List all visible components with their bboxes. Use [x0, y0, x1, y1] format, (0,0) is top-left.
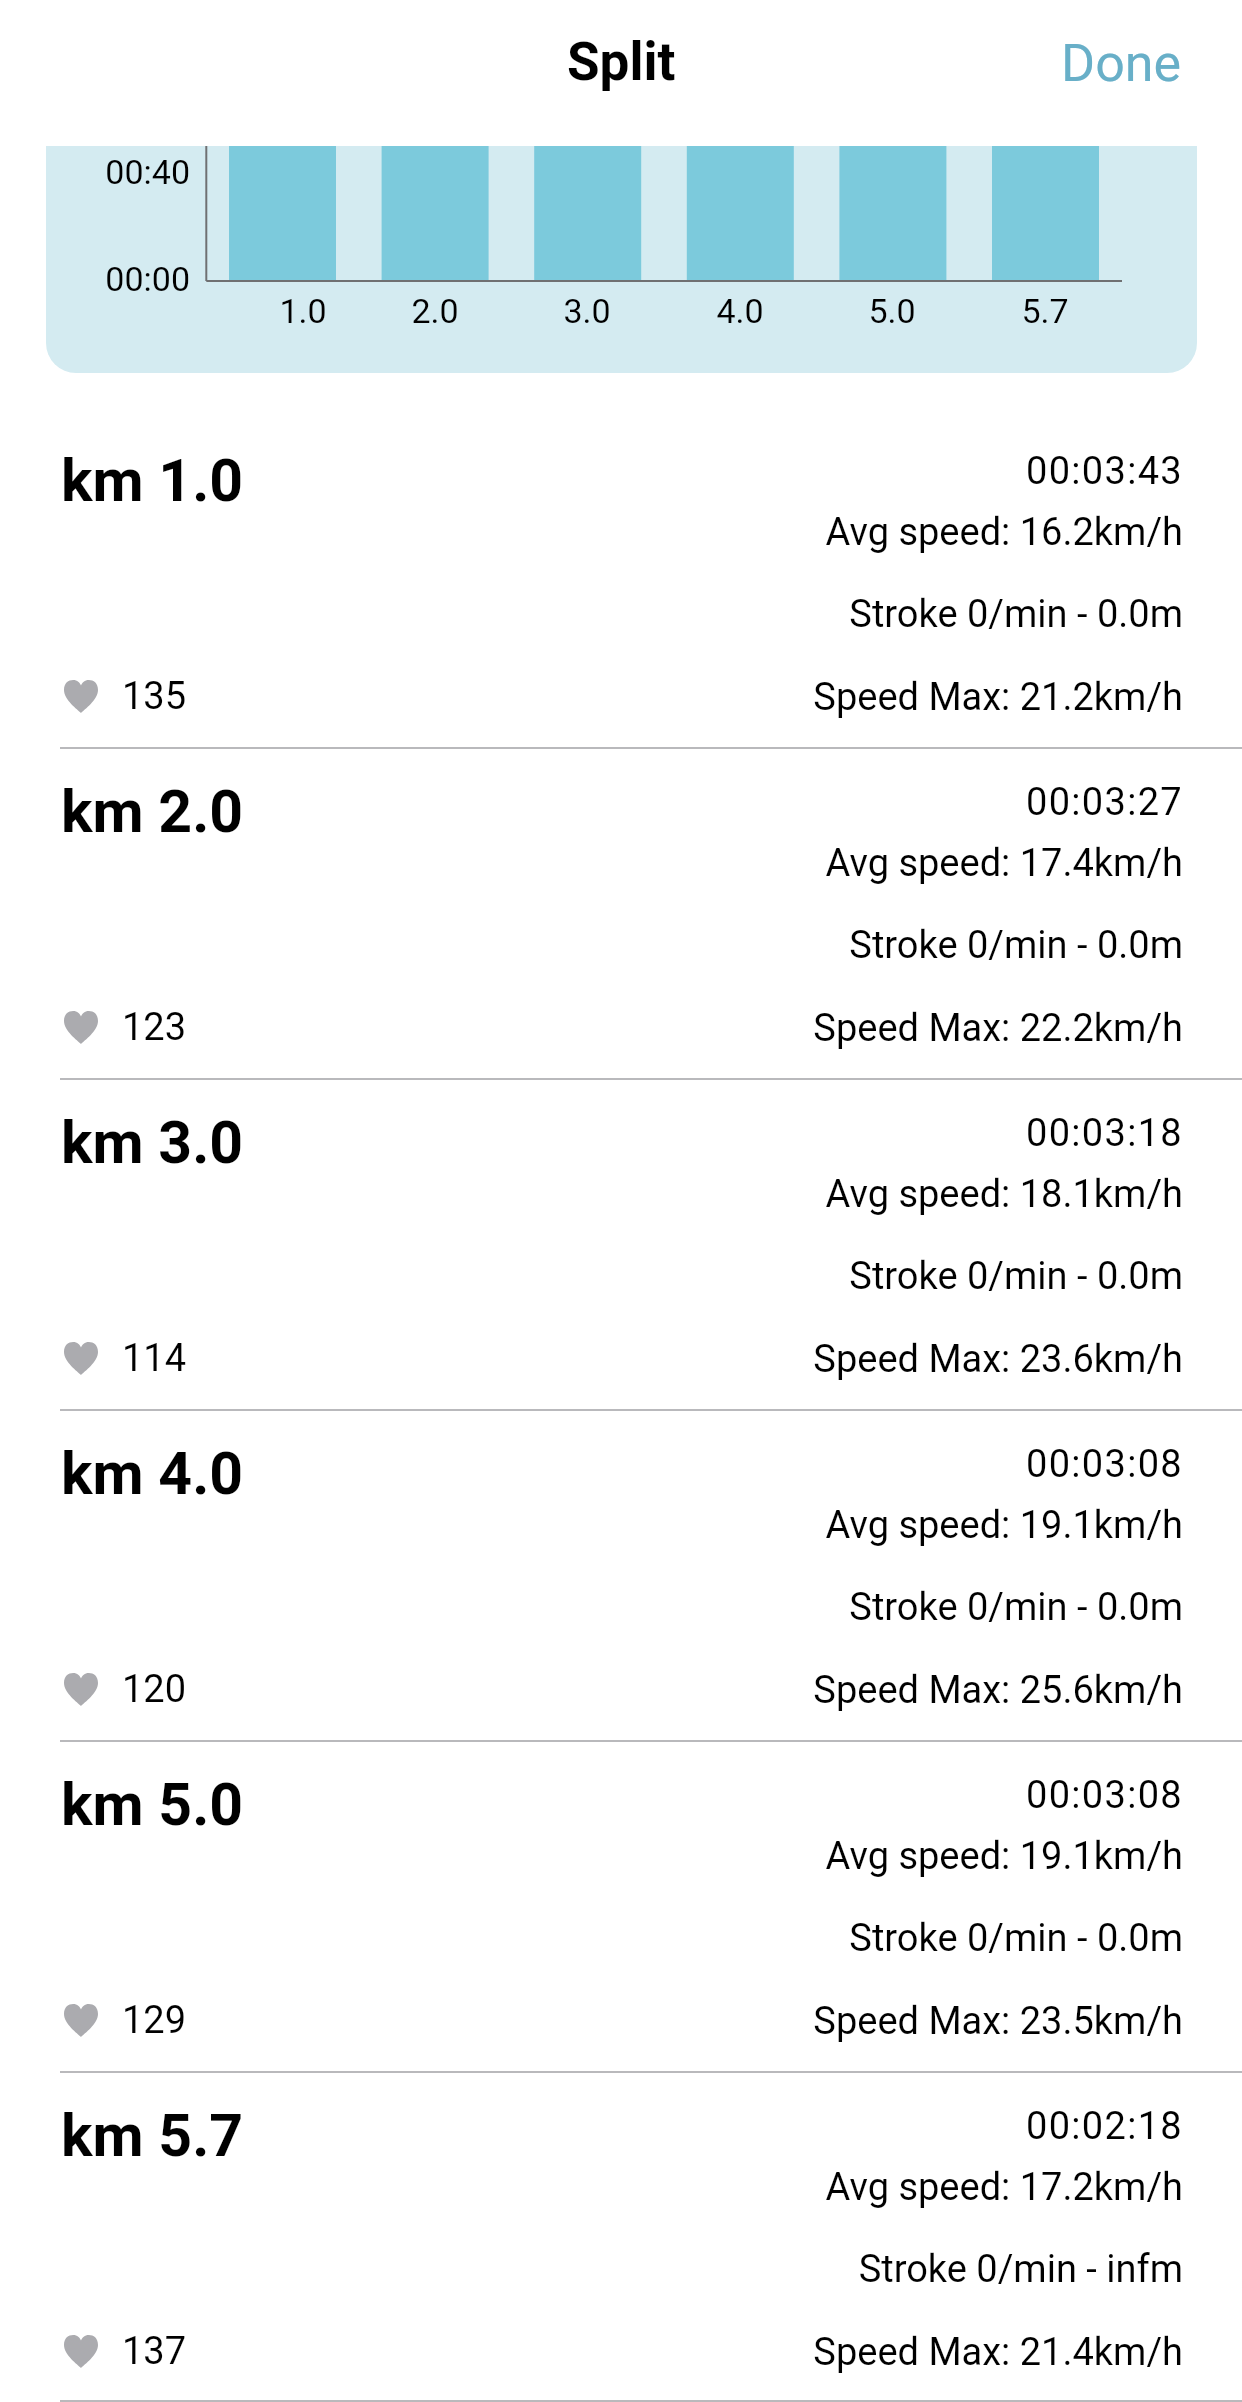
staticText: Avg speed: 17.4km/h [0, 841, 1183, 886]
other: Average heart rate [64, 2335, 98, 2368]
button[interactable]: km 5.7 [0, 2073, 1242, 2402]
staticText: 00:00 [46, 259, 190, 299]
other: Average heart rate [64, 1342, 98, 1375]
button[interactable]: km 4.0 [0, 1411, 1242, 1742]
staticText: Stroke 0/min - 0.0m [0, 1916, 1183, 1961]
other: Split time bar chart [46, 146, 1197, 373]
staticText: 00:02:18 [0, 2104, 1183, 2149]
staticText: 00:03:27 [0, 780, 1183, 825]
staticText: 2.0 [375, 291, 495, 331]
staticText: Avg speed: 19.1km/h [0, 1834, 1183, 1879]
staticText: Speed Max: 23.6km/h [0, 1337, 1183, 1382]
staticText: 3.0 [527, 291, 647, 331]
button[interactable]: km 2.0 [0, 749, 1242, 1080]
staticText: 5.0 [832, 291, 952, 331]
button[interactable]: Done [1021, 0, 1242, 118]
staticText: Speed Max: 23.5km/h [0, 1999, 1183, 2044]
staticText: 120 [122, 1667, 187, 1712]
staticText: 135 [122, 674, 187, 719]
staticText: 00:03:08 [0, 1442, 1183, 1487]
other: Average heart rate [64, 680, 98, 713]
other: Average heart rate [64, 2004, 98, 2037]
staticText: Done [1061, 33, 1182, 94]
button[interactable]: km 1.0 [0, 418, 1242, 749]
staticText: Stroke 0/min - 0.0m [0, 923, 1183, 968]
staticText: Stroke 0/min - 0.0m [0, 1585, 1183, 1630]
staticText: Speed Max: 21.4km/h [0, 2330, 1183, 2375]
staticText: Avg speed: 16.2km/h [0, 510, 1183, 555]
button[interactable]: km 5.0 [0, 1742, 1242, 2073]
staticText: Speed Max: 22.2km/h [0, 1006, 1183, 1051]
staticText: km 1.0 [61, 446, 244, 515]
staticText: km 5.0 [61, 1770, 244, 1839]
staticText: 114 [122, 1336, 187, 1381]
staticText: km 4.0 [61, 1439, 244, 1508]
staticText: 137 [122, 2329, 187, 2374]
staticText: km 3.0 [61, 1108, 244, 1177]
staticText: Stroke 0/min - 0.0m [0, 1254, 1183, 1299]
staticText: 00:03:08 [0, 1773, 1183, 1818]
staticText: Speed Max: 21.2km/h [0, 675, 1183, 720]
staticText: km 2.0 [61, 777, 244, 846]
staticText: Stroke 0/min - 0.0m [0, 592, 1183, 637]
staticText: 5.7 [985, 291, 1105, 331]
other: Average heart rate [64, 1011, 98, 1044]
staticText: 1.0 [243, 291, 363, 331]
staticText: Speed Max: 25.6km/h [0, 1668, 1183, 1713]
other: Average heart rate [64, 1673, 98, 1706]
staticText: Avg speed: 18.1km/h [0, 1172, 1183, 1217]
staticText: 123 [122, 1005, 187, 1050]
staticText: km 5.7 [61, 2101, 244, 2170]
staticText: 129 [122, 1998, 187, 2043]
staticText: Avg speed: 19.1km/h [0, 1503, 1183, 1548]
staticText: 00:03:18 [0, 1111, 1183, 1156]
staticText: 00:40 [46, 152, 190, 192]
staticText: Stroke 0/min - infm [0, 2247, 1183, 2292]
staticText: 4.0 [680, 291, 800, 331]
staticText: Avg speed: 17.2km/h [0, 2165, 1183, 2210]
staticText: 00:03:43 [0, 449, 1183, 494]
button[interactable]: km 3.0 [0, 1080, 1242, 1411]
staticText: Split [567, 31, 676, 93]
